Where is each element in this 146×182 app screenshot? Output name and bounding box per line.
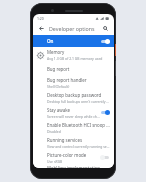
staticText: Disabled: [47, 129, 61, 134]
button[interactable]: Back: [37, 24, 46, 33]
staticText: Desktop full backups aren't currently pr…: [47, 99, 110, 104]
button[interactable]: WebView implementation: [33, 165, 114, 168]
staticText: WebView implementation: [47, 165, 100, 168]
staticText: View and control currently running servi…: [47, 144, 110, 149]
staticText: Bug report: [47, 66, 70, 72]
staticText: Developer options: [49, 25, 95, 32]
staticText: Memory: [47, 49, 65, 55]
button[interactable]: Enable Bluetooth HCI snoop log: [33, 120, 114, 135]
staticText: Screen will never sleep while charging: [47, 114, 100, 119]
button[interactable]: Running services: [33, 135, 114, 150]
button[interactable]: Desktop backup password: [33, 90, 114, 105]
staticText: Running services: [47, 137, 83, 143]
button[interactable]: Memory: [33, 47, 114, 63]
staticText: Avg 1.3 GB of 2.1 GB memory used: [47, 56, 103, 61]
staticText: On: [47, 38, 54, 44]
button[interactable]: Bug report handler: [33, 75, 114, 90]
staticText: Desktop backup password: [47, 92, 102, 98]
staticText: Bug report handler: [47, 77, 87, 83]
staticText: Use sRGB: [47, 159, 63, 164]
button[interactable]: Bug report: [33, 63, 114, 75]
button[interactable]: Picture-color mode: [33, 150, 114, 165]
button[interactable]: Stay awake: [33, 105, 114, 120]
button[interactable]: Search: [101, 24, 110, 33]
staticText: Shell (Default): [47, 84, 70, 89]
staticText: Picture-color mode: [47, 152, 87, 158]
staticText: Enable Bluetooth HCI snoop log: [47, 122, 110, 128]
button[interactable]: On: [33, 35, 114, 47]
staticText: Stay awake: [47, 107, 71, 113]
staticText: 1:20: [37, 16, 44, 21]
